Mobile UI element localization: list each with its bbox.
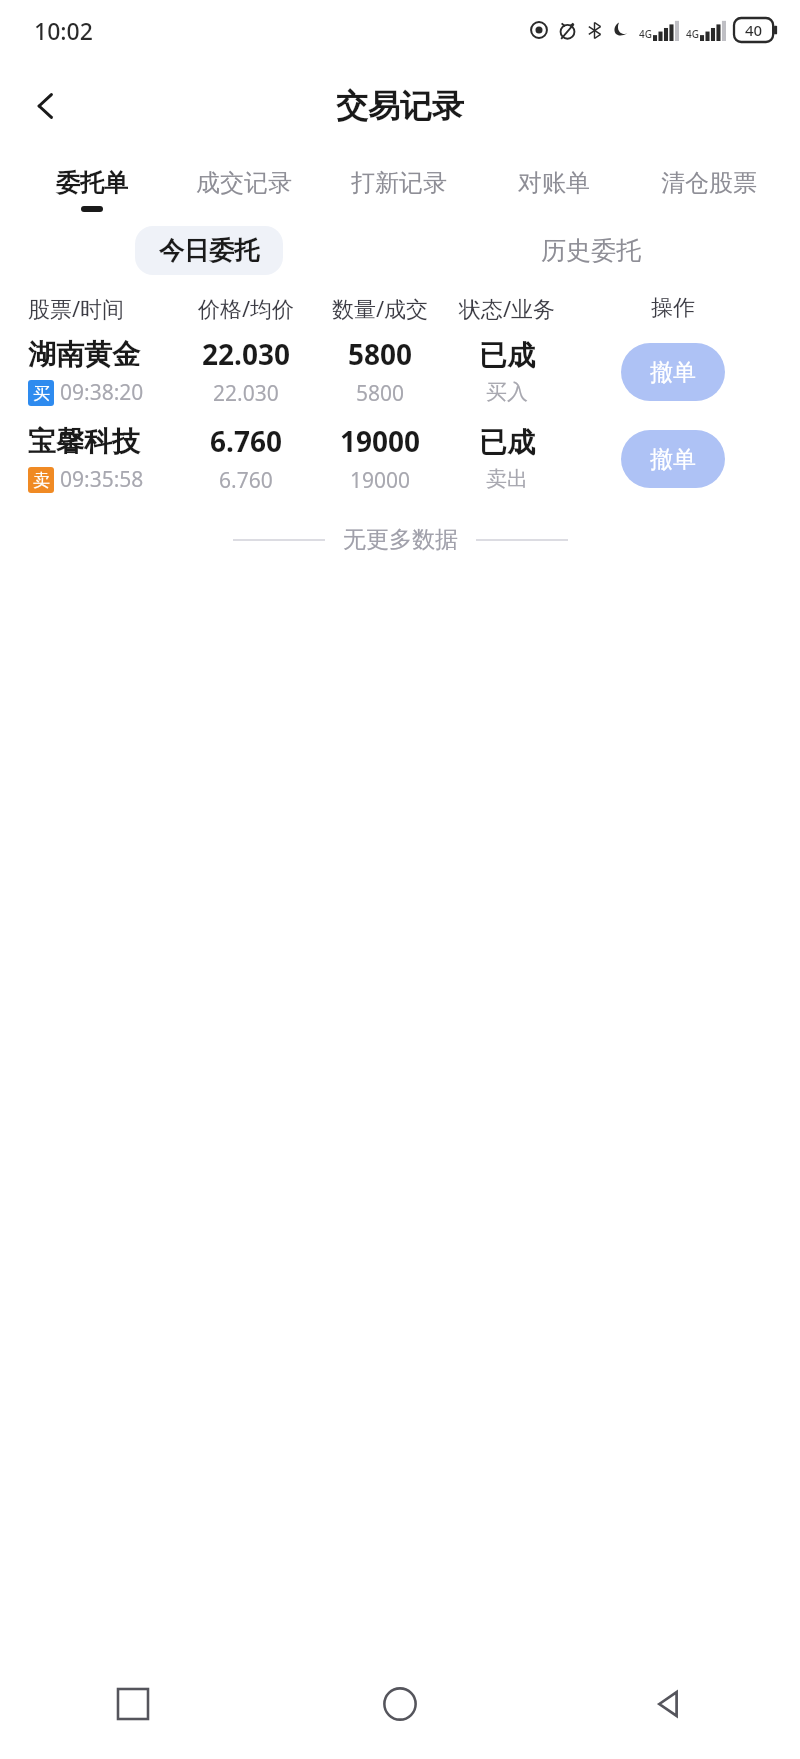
- staticText: 买: [33, 383, 50, 404]
- button[interactable]: 历史委托: [517, 226, 665, 275]
- button[interactable]: 今日委托: [135, 226, 283, 275]
- staticText: 22.030: [213, 379, 279, 408]
- staticText: 宝馨科技: [28, 424, 140, 459]
- staticText: 10:02: [34, 15, 93, 46]
- staticText: 09:38:20: [60, 378, 144, 407]
- button[interactable]: 宝馨科技: [0, 422, 800, 495]
- staticText: 价格/均价: [178, 293, 314, 323]
- staticText: 撤单: [650, 445, 696, 474]
- staticText: 交易记录: [336, 86, 464, 126]
- button[interactable]: 打新记录: [321, 168, 476, 206]
- staticText: 5800: [356, 379, 405, 408]
- staticText: 撤单: [650, 358, 696, 387]
- staticText: 数量/成交: [314, 293, 446, 323]
- staticText: 09:35:58: [60, 465, 144, 494]
- staticText: 委托单: [56, 168, 128, 198]
- staticText: 已成: [479, 425, 535, 460]
- staticText: 40: [745, 20, 763, 40]
- staticText: 状态/业务: [446, 293, 568, 323]
- staticText: 历史委托: [541, 235, 641, 266]
- staticText: 打新记录: [351, 168, 447, 198]
- staticText: 对账单: [518, 168, 590, 198]
- staticText: 清仓股票: [661, 168, 757, 198]
- staticText: 6.760: [219, 466, 273, 495]
- button[interactable]: 清仓股票: [631, 168, 786, 206]
- staticText: 已成: [479, 338, 535, 373]
- button[interactable]: Home: [266, 1649, 533, 1759]
- staticText: 股票/时间: [28, 293, 178, 323]
- staticText: 买入: [486, 379, 528, 405]
- button[interactable]: 委托单: [18, 168, 166, 212]
- staticText: 无更多数据: [343, 525, 458, 554]
- button[interactable]: Back: [18, 78, 74, 134]
- staticText: 卖出: [486, 466, 528, 492]
- staticText: 6.760: [210, 422, 282, 460]
- staticText: 4G: [639, 27, 652, 41]
- staticText: 22.030: [202, 335, 290, 373]
- staticText: 19000: [350, 466, 411, 495]
- staticText: 今日委托: [159, 235, 259, 266]
- staticText: 5800: [348, 335, 413, 373]
- button[interactable]: Back: [533, 1649, 800, 1759]
- button[interactable]: 湖南黄金: [0, 335, 800, 408]
- staticText: 19000: [340, 422, 421, 460]
- staticText: 4G: [686, 27, 699, 41]
- staticText: 湖南黄金: [28, 337, 140, 372]
- button[interactable]: 撤单: [621, 343, 725, 401]
- button[interactable]: 成交记录: [166, 168, 321, 206]
- button[interactable]: Recents: [0, 1649, 266, 1759]
- staticText: 卖: [33, 470, 50, 491]
- staticText: 成交记录: [196, 168, 292, 198]
- staticText: 操作: [568, 294, 778, 322]
- button[interactable]: 对账单: [476, 168, 631, 206]
- button[interactable]: 撤单: [621, 430, 725, 488]
